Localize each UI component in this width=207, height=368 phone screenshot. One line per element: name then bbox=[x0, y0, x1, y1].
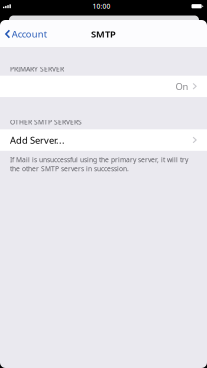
staticText: If Mail is unsuccessful using the primar… bbox=[10, 155, 188, 173]
button[interactable]: Add Server... bbox=[0, 129, 207, 151]
staticText: SMTP bbox=[91, 28, 116, 40]
staticText: Account bbox=[12, 28, 47, 40]
staticText: 10:00 bbox=[92, 2, 110, 11]
staticText: OTHER SMTP SERVERS bbox=[10, 118, 82, 126]
button[interactable]: On bbox=[0, 76, 207, 97]
button[interactable]: Account bbox=[0, 20, 52, 47]
staticText: On bbox=[175, 80, 188, 93]
staticText: PRIMARY SERVER bbox=[10, 64, 64, 73]
staticText: Add Server... bbox=[10, 134, 65, 146]
